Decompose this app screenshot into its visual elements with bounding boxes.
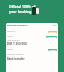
staticText: IDR 1 250 000: [7, 42, 27, 46]
staticText: Status: [7, 35, 14, 38]
button[interactable]: Status: [7, 35, 57, 38]
staticText: Booking summary: [7, 24, 28, 27]
button[interactable]: Booking summary: [7, 24, 57, 27]
staticText: Payment method: [7, 53, 24, 56]
button[interactable]: Check in: [7, 30, 57, 33]
staticText: Total amount: [7, 39, 20, 42]
staticText: Pending: [49, 31, 56, 33]
staticText: Guest: [7, 48, 13, 51]
staticText: Bank transfer: [7, 57, 25, 61]
button[interactable]: Profile: [32, 7, 36, 15]
staticText: 2 adults: [49, 49, 56, 51]
staticText: Edit: [53, 24, 57, 27]
staticText: Confirmed: [47, 36, 56, 38]
staticText: Official 100% of: [9, 4, 36, 9]
staticText: your booking: [9, 9, 32, 14]
staticText: Check in: [7, 30, 16, 33]
button[interactable]: Guest: [7, 48, 57, 51]
